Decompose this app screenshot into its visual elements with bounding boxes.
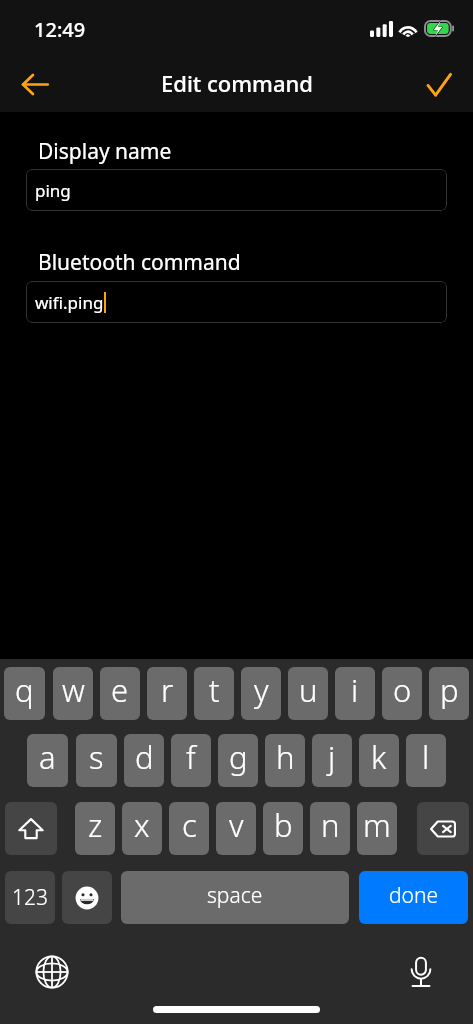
button[interactable]: e bbox=[100, 667, 140, 720]
button[interactable]: n bbox=[310, 802, 350, 855]
staticText: 123 bbox=[12, 883, 48, 912]
staticText: wifi.ping bbox=[35, 291, 104, 314]
button[interactable]: done bbox=[359, 871, 468, 924]
staticText: v bbox=[229, 804, 244, 846]
staticText: 12:49 bbox=[34, 16, 86, 43]
button[interactable]: r bbox=[147, 667, 187, 720]
button[interactable]: Change keyboard bbox=[28, 948, 76, 996]
staticText: done bbox=[389, 881, 439, 910]
staticText: q bbox=[15, 669, 34, 711]
staticText: t bbox=[209, 669, 220, 711]
button[interactable]: Back bbox=[7, 56, 63, 112]
button[interactable]: space bbox=[121, 871, 349, 924]
staticText: x bbox=[134, 804, 150, 846]
button[interactable]: k bbox=[359, 734, 399, 787]
staticText: o bbox=[393, 669, 412, 711]
staticText: Display name bbox=[38, 137, 172, 166]
button[interactable]: q bbox=[4, 667, 45, 720]
button[interactable]: wifi.ping bbox=[26, 281, 447, 323]
button[interactable]: Backspace bbox=[417, 802, 469, 855]
button[interactable]: a bbox=[27, 734, 68, 787]
staticText: d bbox=[135, 736, 154, 778]
button[interactable]: x bbox=[122, 802, 162, 855]
button[interactable]: p bbox=[429, 667, 469, 720]
button[interactable]: g bbox=[218, 734, 258, 787]
button[interactable]: l bbox=[406, 734, 446, 787]
staticText: k bbox=[371, 736, 387, 778]
staticText: Bluetooth command bbox=[38, 248, 241, 277]
button[interactable]: y bbox=[241, 667, 281, 720]
staticText: i bbox=[351, 669, 359, 711]
staticText: h bbox=[276, 736, 295, 778]
staticText: f bbox=[186, 736, 196, 778]
button[interactable]: d bbox=[124, 734, 164, 787]
staticText: c bbox=[182, 804, 197, 846]
staticText: j bbox=[328, 736, 336, 778]
button[interactable]: b bbox=[263, 802, 303, 855]
button[interactable]: v bbox=[216, 802, 256, 855]
staticText: ping bbox=[35, 179, 71, 202]
button[interactable]: 123 bbox=[5, 871, 55, 924]
staticText: y bbox=[254, 669, 269, 711]
staticText: l bbox=[422, 736, 430, 778]
button[interactable]: Emoji bbox=[62, 871, 112, 924]
staticText: r bbox=[161, 669, 174, 711]
button[interactable]: u bbox=[288, 667, 328, 720]
button[interactable]: i bbox=[335, 667, 375, 720]
staticText: space bbox=[207, 881, 263, 910]
staticText: g bbox=[229, 736, 248, 778]
button[interactable]: w bbox=[53, 667, 93, 720]
staticText: a bbox=[39, 736, 56, 778]
button[interactable]: z bbox=[75, 802, 115, 855]
staticText: Edit command bbox=[161, 68, 313, 98]
button[interactable]: c bbox=[169, 802, 209, 855]
button[interactable]: ping bbox=[26, 169, 447, 211]
button[interactable]: f bbox=[171, 734, 211, 787]
staticText: u bbox=[299, 669, 318, 711]
button[interactable]: Save bbox=[411, 56, 467, 112]
staticText: b bbox=[274, 804, 293, 846]
staticText: w bbox=[62, 669, 85, 711]
staticText: n bbox=[321, 804, 340, 846]
button[interactable]: t bbox=[194, 667, 234, 720]
staticText: s bbox=[89, 736, 104, 778]
button[interactable]: h bbox=[265, 734, 305, 787]
button[interactable]: j bbox=[312, 734, 352, 787]
staticText: p bbox=[440, 669, 459, 711]
button[interactable]: s bbox=[76, 734, 117, 787]
staticText: e bbox=[111, 669, 129, 711]
button[interactable]: Shift bbox=[5, 802, 57, 855]
button[interactable]: m bbox=[357, 802, 397, 855]
staticText: z bbox=[88, 804, 103, 846]
button[interactable]: o bbox=[382, 667, 422, 720]
button[interactable]: Voice input bbox=[397, 948, 445, 996]
staticText: m bbox=[363, 804, 391, 846]
